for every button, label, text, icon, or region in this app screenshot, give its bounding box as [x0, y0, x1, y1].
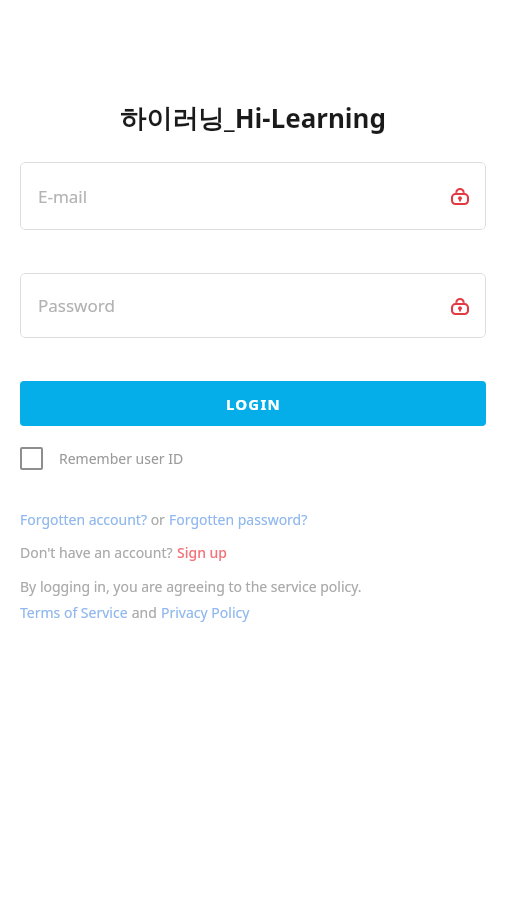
staticText: LOGIN: [226, 394, 281, 414]
button[interactable]: Password: [20, 273, 486, 338]
other: Secure field: [452, 298, 468, 314]
staticText: Terms of Service: [20, 603, 128, 622]
staticText: Privacy Policy: [161, 603, 250, 622]
staticText: 하이러닝_Hi-Learning: [120, 100, 386, 136]
button[interactable]: Sign up: [177, 543, 228, 562]
button[interactable]: Forgotten password?: [169, 510, 308, 529]
other: Secure field: [452, 188, 468, 204]
staticText: and: [128, 603, 161, 622]
staticText: Forgotten account?: [20, 510, 147, 529]
staticText: By logging in, you are agreeing to the s…: [20, 577, 362, 596]
button[interactable]: Forgotten account?: [20, 510, 147, 529]
button[interactable]: Terms of Service: [20, 603, 128, 622]
staticText: E-mail: [38, 185, 452, 208]
staticText: Remember user ID: [59, 449, 184, 468]
button[interactable]: Privacy Policy: [161, 603, 250, 622]
button[interactable]: Remember user ID: [20, 447, 184, 470]
staticText: Don't have an account?: [20, 543, 177, 562]
button[interactable]: LOGIN: [20, 381, 486, 426]
button[interactable]: E-mail: [20, 162, 486, 230]
staticText: Sign up: [177, 543, 228, 562]
staticText: Forgotten password?: [169, 510, 308, 529]
staticText: or: [147, 510, 169, 529]
staticText: Password: [38, 294, 452, 317]
